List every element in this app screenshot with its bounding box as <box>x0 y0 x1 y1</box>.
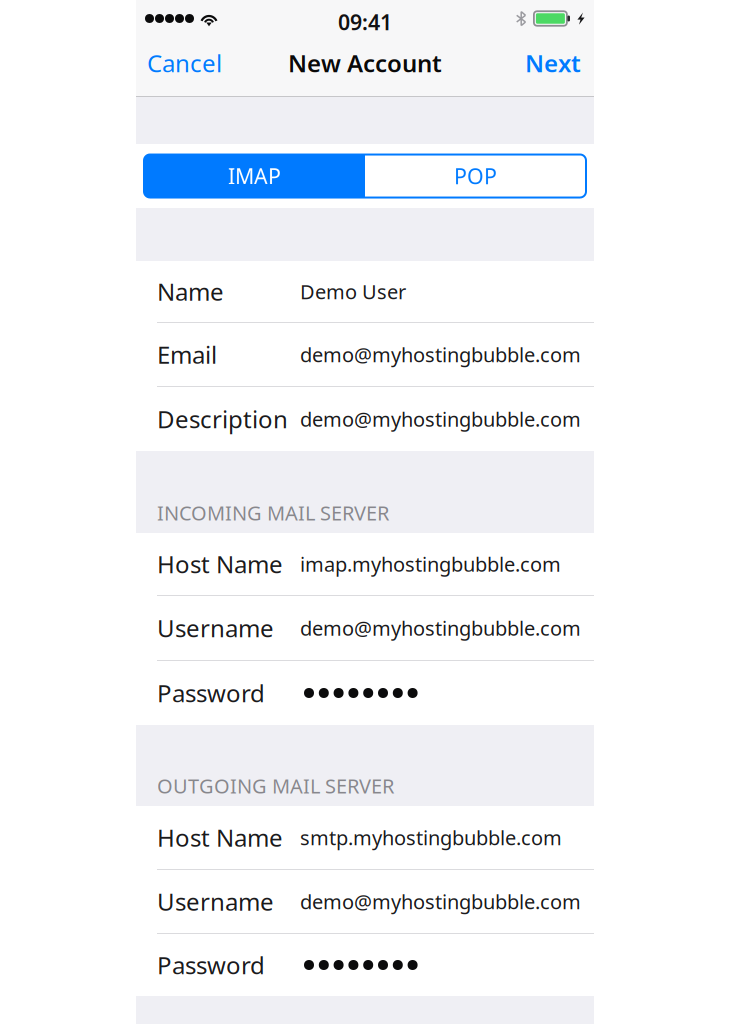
staticText: smtp.myhostingbubble.com <box>300 824 562 851</box>
staticText: Host Name <box>157 822 283 853</box>
staticText: INCOMING MAIL SERVER <box>157 499 389 526</box>
staticText: Description <box>157 403 288 435</box>
button[interactable]: Password <box>136 934 594 996</box>
staticText: Password <box>157 949 265 981</box>
staticText: OUTGOING MAIL SERVER <box>157 772 394 799</box>
staticText: Next <box>525 47 581 79</box>
button[interactable]: Password <box>136 661 594 725</box>
staticText: Host Name <box>157 548 283 580</box>
button[interactable]: Cancel <box>136 44 233 82</box>
button[interactable]: Next <box>512 44 594 82</box>
staticText: Email <box>157 339 217 370</box>
button[interactable]: Email <box>136 323 594 387</box>
button[interactable]: Host Name <box>136 806 594 870</box>
button[interactable]: Name <box>136 261 594 323</box>
staticText: Cancel <box>147 47 222 79</box>
staticText: Name <box>157 276 224 307</box>
button[interactable]: Username <box>136 596 594 661</box>
button[interactable]: POP <box>365 154 586 197</box>
staticText: New Account <box>288 47 442 79</box>
staticText: imap.myhostingbubble.com <box>300 551 561 577</box>
staticText: Password <box>157 677 265 709</box>
staticText: Username <box>157 612 274 644</box>
staticText: 09:41 <box>338 8 392 36</box>
staticText: demo@myhostingbubble.com <box>300 615 581 641</box>
button[interactable]: Description <box>136 387 594 451</box>
staticText: IMAP <box>228 162 281 190</box>
staticText: demo@myhostingbubble.com <box>300 341 581 368</box>
button[interactable]: Username <box>136 870 594 934</box>
staticText: demo@myhostingbubble.com <box>300 888 581 915</box>
staticText: demo@myhostingbubble.com <box>300 406 581 432</box>
button[interactable]: Host Name <box>136 533 594 596</box>
staticText: Username <box>157 886 274 917</box>
staticText: Demo User <box>300 278 406 305</box>
staticText: POP <box>454 162 497 190</box>
button[interactable]: IMAP <box>144 154 365 197</box>
